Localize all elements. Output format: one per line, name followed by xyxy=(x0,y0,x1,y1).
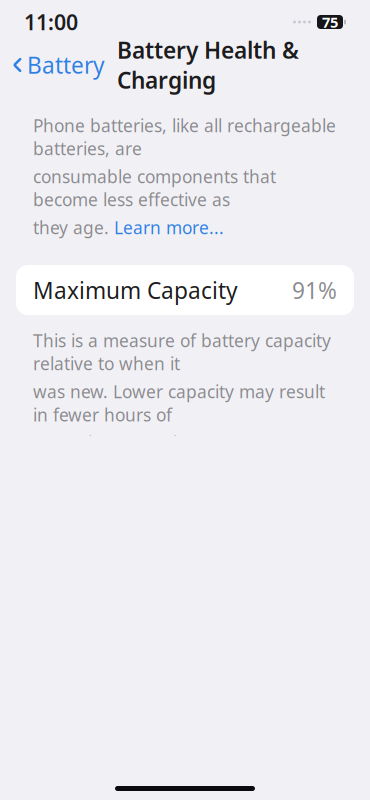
staticText: consumable components that become less e… xyxy=(33,165,276,211)
staticText: 91% xyxy=(292,275,337,305)
staticText: Battery Health & Charging xyxy=(117,35,299,95)
staticText: Phone batteries, like all rechargeable b… xyxy=(33,114,336,160)
staticText: Battery xyxy=(27,50,105,80)
staticText: Learn more... xyxy=(114,216,224,239)
staticText: 11:00 xyxy=(24,8,78,36)
staticText: Maximum Capacity xyxy=(33,275,238,305)
staticText: they age. xyxy=(33,216,114,239)
button[interactable]: Learn more... xyxy=(114,216,224,239)
staticText: was new. Lower capacity may result in fe… xyxy=(33,380,325,426)
staticText: 75 xyxy=(322,12,338,32)
staticText: This is a measure of battery capacity re… xyxy=(33,329,331,375)
button[interactable]: Maximum Capacity xyxy=(16,265,354,315)
staticText: charging routine so it can wait to finis… xyxy=(33,747,302,793)
button[interactable]: Battery xyxy=(0,44,105,86)
